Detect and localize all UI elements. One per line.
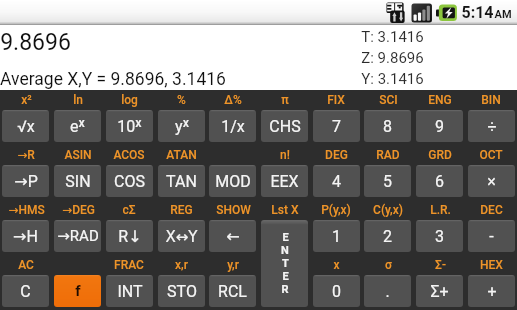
button[interactable]: INT <box>106 275 153 307</box>
staticText: Y: 3.1416 <box>361 70 424 88</box>
staticText: . <box>385 282 390 301</box>
staticText: STO <box>167 282 197 301</box>
staticText: →DEG <box>62 203 95 217</box>
button[interactable]: STO <box>158 275 205 307</box>
staticText: 1 <box>332 227 341 246</box>
button[interactable]: →H <box>2 220 49 252</box>
button[interactable]: 7 <box>313 110 360 142</box>
button[interactable]: 6 <box>416 165 463 197</box>
button[interactable]: eˣ <box>54 110 101 142</box>
staticText: cΣ <box>122 203 136 217</box>
other: 3G mobile data <box>386 2 405 23</box>
staticText: FIX <box>327 93 345 107</box>
staticText: MOD <box>215 172 251 191</box>
button[interactable]: COS <box>106 165 153 197</box>
staticText: Average X,Y = 9.8696, 3.1416 <box>0 69 226 90</box>
staticText: 7 <box>332 117 341 136</box>
staticText: ATAN <box>166 148 197 162</box>
button[interactable]: CHS <box>261 110 308 142</box>
staticText: Σ- <box>435 258 446 272</box>
button[interactable]: + <box>468 275 515 307</box>
button[interactable]: 2 <box>364 220 411 252</box>
staticText: σ <box>385 258 392 272</box>
staticText: 5:14 <box>461 3 494 22</box>
button[interactable]: SIN <box>54 165 101 197</box>
button[interactable]: ← <box>209 220 256 252</box>
staticText: 6 <box>435 172 444 191</box>
button[interactable]: 3 <box>416 220 463 252</box>
staticText: 8 <box>383 117 392 136</box>
staticText: - <box>489 227 494 246</box>
button[interactable]: →P <box>2 165 49 197</box>
button[interactable]: 10ˣ <box>106 110 153 142</box>
button[interactable]: 4 <box>313 165 360 197</box>
staticText: ← <box>226 227 240 246</box>
staticText: y,r <box>227 258 239 272</box>
staticText: 10ˣ <box>117 117 142 136</box>
other: Battery charging <box>436 4 458 22</box>
staticText: 9 <box>435 117 444 136</box>
button[interactable]: . <box>364 275 411 307</box>
staticText: log <box>121 93 138 107</box>
button[interactable]: EEX <box>261 165 308 197</box>
button[interactable]: yˣ <box>158 110 205 142</box>
button[interactable]: →RAD <box>54 220 101 252</box>
button[interactable]: RCL <box>209 275 256 307</box>
staticText: EEX <box>270 172 299 191</box>
button[interactable]: X↔Y <box>158 220 205 252</box>
button[interactable]: f <box>54 275 101 307</box>
staticText: X↔Y <box>165 228 198 245</box>
staticText: ÷ <box>487 117 497 136</box>
button[interactable]: - <box>468 220 515 252</box>
button[interactable]: √x <box>2 110 49 142</box>
button[interactable]: TAN <box>158 165 205 197</box>
staticText: 2 <box>383 227 392 246</box>
staticText: + <box>487 282 497 301</box>
staticText: →H <box>13 227 38 246</box>
staticText: SCI <box>379 93 398 107</box>
staticText: x² <box>21 93 32 107</box>
staticText: INT <box>117 282 143 301</box>
other: Signal strength <box>411 3 433 23</box>
staticText: C(y,x) <box>373 203 403 217</box>
button[interactable]: 1 <box>313 220 360 252</box>
staticText: × <box>487 172 496 191</box>
staticText: COS <box>114 172 145 191</box>
staticText: ln <box>73 93 83 107</box>
staticText: →R <box>17 148 35 162</box>
staticText: RCL <box>218 282 247 301</box>
staticText: R↓ <box>118 227 142 246</box>
staticText: % <box>177 93 186 107</box>
staticText: N <box>281 244 289 257</box>
staticText: Δ% <box>224 93 242 107</box>
button[interactable]: E <box>261 220 308 307</box>
button[interactable]: MOD <box>209 165 256 197</box>
button[interactable]: C <box>2 275 49 307</box>
button[interactable]: 1/x <box>209 110 256 142</box>
button[interactable]: 0 <box>313 275 360 307</box>
staticText: π <box>281 93 289 107</box>
staticText: →HMS <box>8 203 45 217</box>
button[interactable]: 5 <box>364 165 411 197</box>
staticText: R <box>281 283 289 296</box>
button[interactable]: 8 <box>364 110 411 142</box>
button[interactable]: Σ+ <box>416 275 463 307</box>
button[interactable]: × <box>468 165 515 197</box>
staticText: SIN <box>65 172 91 191</box>
staticText: CHS <box>269 117 301 136</box>
button[interactable]: 9 <box>416 110 463 142</box>
staticText: FRAC <box>114 258 144 272</box>
staticText: 0 <box>332 282 341 301</box>
staticText: ACOS <box>113 148 145 162</box>
staticText: HEX <box>480 258 503 272</box>
staticText: ENG <box>428 93 452 107</box>
button[interactable]: R↓ <box>106 220 153 252</box>
staticText: →RAD <box>57 227 99 245</box>
staticText: SHOW <box>216 203 251 217</box>
staticText: √x <box>17 117 35 136</box>
staticText: P(y,x) <box>321 203 351 217</box>
staticText: E <box>282 270 289 283</box>
staticText: OCT <box>479 148 503 162</box>
staticText: AM <box>494 8 512 21</box>
button[interactable]: ÷ <box>468 110 515 142</box>
